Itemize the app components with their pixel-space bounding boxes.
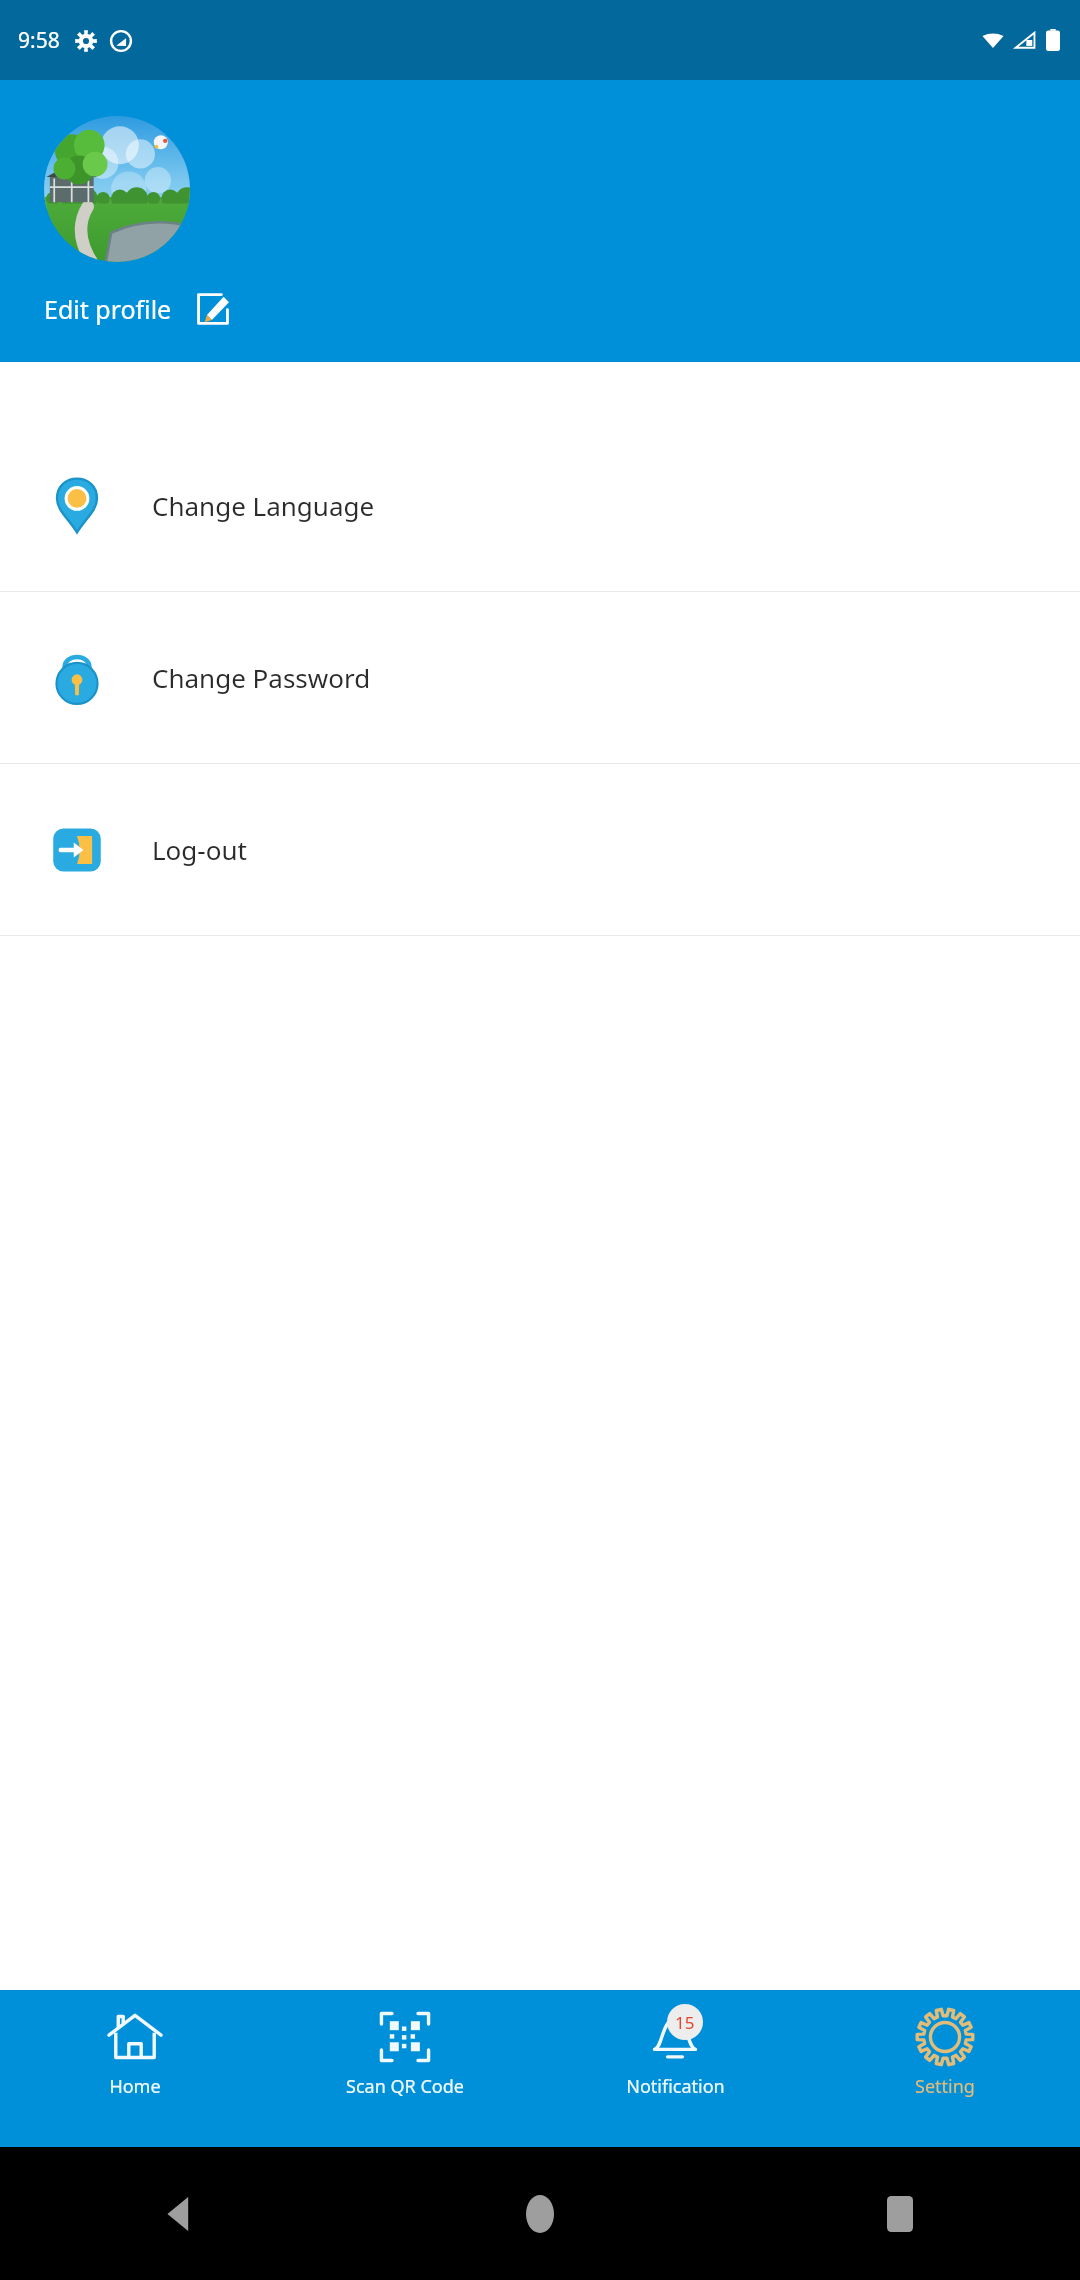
staticText: Change Language <box>152 488 375 523</box>
staticText: Edit profile <box>44 292 172 326</box>
staticText: 9:58 <box>18 26 60 55</box>
staticText: Change Password <box>152 660 371 695</box>
button[interactable]: Setting <box>810 1990 1080 2147</box>
button[interactable]: Edit profile <box>44 290 242 328</box>
staticText: Notification <box>626 2074 725 2099</box>
staticText: Log-out <box>152 832 247 867</box>
other: Home <box>526 2195 554 2233</box>
button[interactable]: Log-out <box>0 764 1080 935</box>
button[interactable]: Change Password <box>0 592 1080 763</box>
button[interactable]: Home <box>0 1990 270 2147</box>
other: Recent apps <box>887 2196 913 2232</box>
button[interactable]: Scan QR Code <box>270 1990 540 2147</box>
button[interactable]: 15 <box>540 1990 810 2147</box>
other: Edit profile <box>194 290 232 328</box>
staticText: 15 <box>675 2011 695 2034</box>
other: Back <box>163 2197 197 2231</box>
staticText: Setting <box>915 2074 975 2099</box>
staticText: Scan QR Code <box>346 2074 464 2099</box>
staticText: Home <box>109 2074 161 2099</box>
button[interactable]: Change Language <box>0 420 1080 591</box>
